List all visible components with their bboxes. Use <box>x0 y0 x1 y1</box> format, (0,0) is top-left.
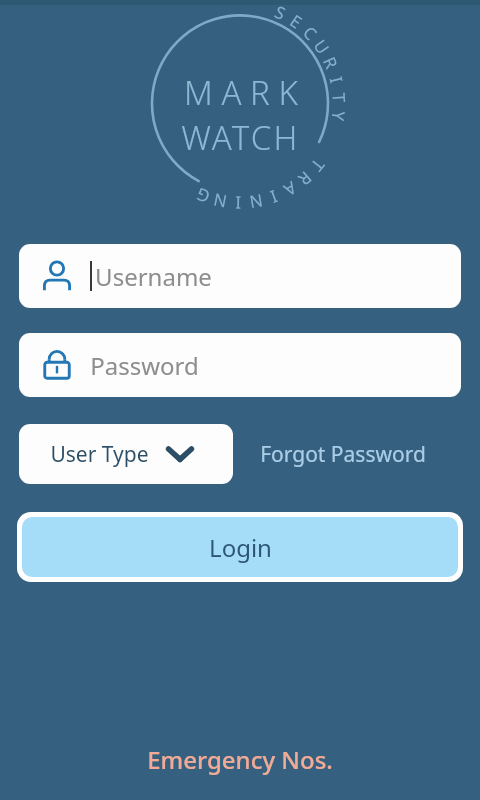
button[interactable]: Username <box>19 244 461 308</box>
staticText: Emergency Nos. <box>147 743 333 776</box>
staticText: User Type <box>50 440 149 469</box>
staticText: M A R K <box>184 70 298 115</box>
staticText: Password <box>90 349 199 382</box>
button[interactable]: Forgot Password <box>258 432 428 477</box>
button[interactable]: User Type <box>19 424 233 484</box>
staticText: Username <box>95 260 212 293</box>
staticText: Forgot Password <box>260 440 426 469</box>
button[interactable]: Login <box>17 512 463 582</box>
staticText: WATCH <box>181 115 300 160</box>
staticText: Login <box>209 531 272 564</box>
button[interactable]: Password <box>19 333 461 397</box>
button[interactable]: Emergency Nos. <box>135 737 345 782</box>
